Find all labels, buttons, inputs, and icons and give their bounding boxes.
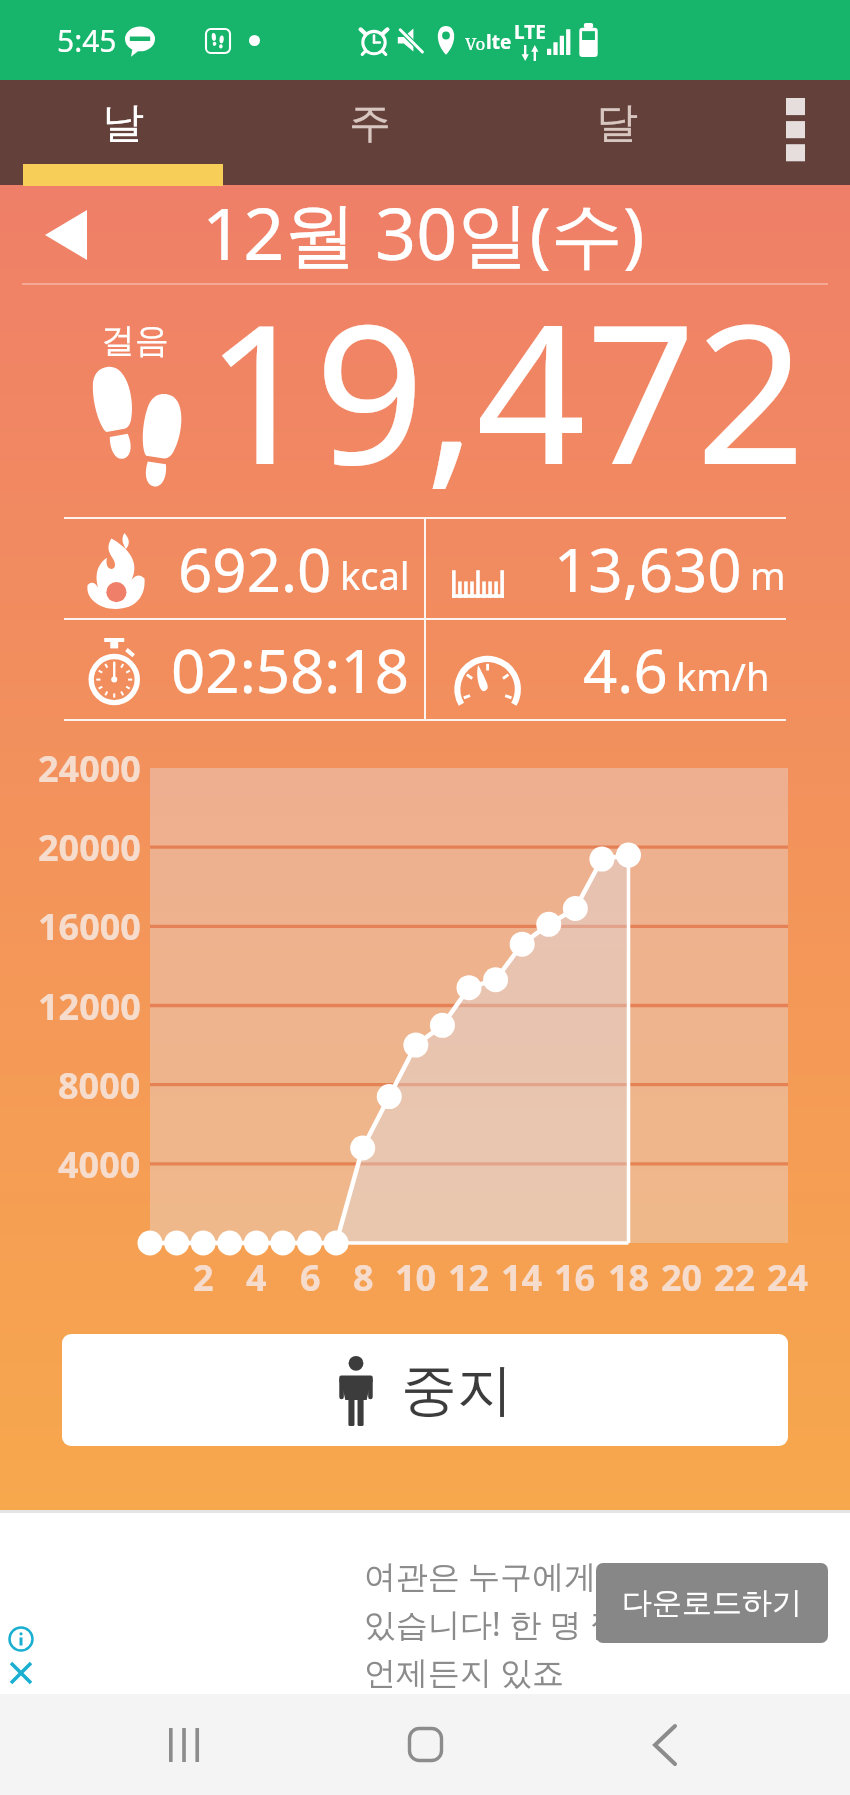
- button[interactable]: 주: [246, 80, 493, 185]
- staticText: 중지: [401, 1355, 513, 1426]
- staticText: 2: [193, 1253, 214, 1302]
- staticText: 8: [353, 1253, 374, 1302]
- staticText: 13,630: [554, 528, 742, 610]
- staticText: 6: [300, 1253, 321, 1302]
- staticText: kcal: [340, 549, 410, 601]
- button[interactable]: 달: [493, 80, 740, 185]
- staticText: 걸음: [101, 319, 169, 362]
- staticText: 14: [501, 1253, 543, 1302]
- staticText: 10: [395, 1253, 437, 1302]
- staticText: 달: [596, 97, 638, 150]
- button[interactable]: 02:58:18: [64, 620, 424, 719]
- staticText: 4000: [58, 1140, 141, 1189]
- staticText: m: [750, 549, 786, 601]
- staticText: 12월 30일(수): [202, 183, 645, 281]
- button[interactable]: Back: [590, 1694, 740, 1795]
- staticText: 4: [246, 1253, 267, 1302]
- staticText: LTE: [514, 19, 546, 45]
- staticText: 24: [767, 1253, 809, 1302]
- staticText: 02:58:18: [171, 629, 410, 711]
- staticText: 16: [554, 1253, 596, 1302]
- staticText: 19,472: [205, 259, 806, 489]
- button[interactable]: 중지: [62, 1334, 788, 1446]
- button[interactable]: 4.6: [426, 620, 786, 719]
- button[interactable]: 692.0: [64, 519, 424, 618]
- staticText: 4.6: [583, 629, 668, 711]
- button[interactable]: 13,630: [426, 519, 786, 618]
- other: Close ad: [8, 1660, 34, 1686]
- staticText: 여관은 누구에게나 열려 있습니다! 한 명 낄 언제든지 있죠: [364, 1554, 701, 1694]
- staticText: km/h: [676, 650, 770, 702]
- button[interactable]: Home: [350, 1694, 500, 1795]
- staticText: 12: [448, 1253, 490, 1302]
- staticText: 주: [349, 97, 391, 150]
- staticText: lte: [486, 29, 512, 55]
- staticText: 24000: [38, 744, 141, 793]
- staticText: Vo: [465, 32, 486, 55]
- staticText: 5:45: [57, 20, 117, 61]
- staticText: 20: [661, 1253, 703, 1302]
- staticText: 16000: [38, 902, 141, 951]
- button[interactable]: 날: [0, 80, 246, 185]
- other: Ad info: [8, 1626, 34, 1652]
- button[interactable]: 다운로드하기: [596, 1563, 828, 1643]
- staticText: 8000: [58, 1061, 141, 1110]
- staticText: 20000: [38, 823, 141, 872]
- button[interactable]: More options: [740, 80, 850, 185]
- button[interactable]: Previous day: [28, 197, 104, 273]
- button[interactable]: Recent apps: [110, 1694, 260, 1795]
- staticText: 다운로드하기: [622, 1584, 802, 1622]
- staticText: 22: [714, 1253, 756, 1302]
- staticText: 12000: [38, 982, 141, 1031]
- staticText: 날: [102, 97, 144, 150]
- staticText: 692.0: [178, 528, 332, 610]
- staticText: 18: [608, 1253, 650, 1302]
